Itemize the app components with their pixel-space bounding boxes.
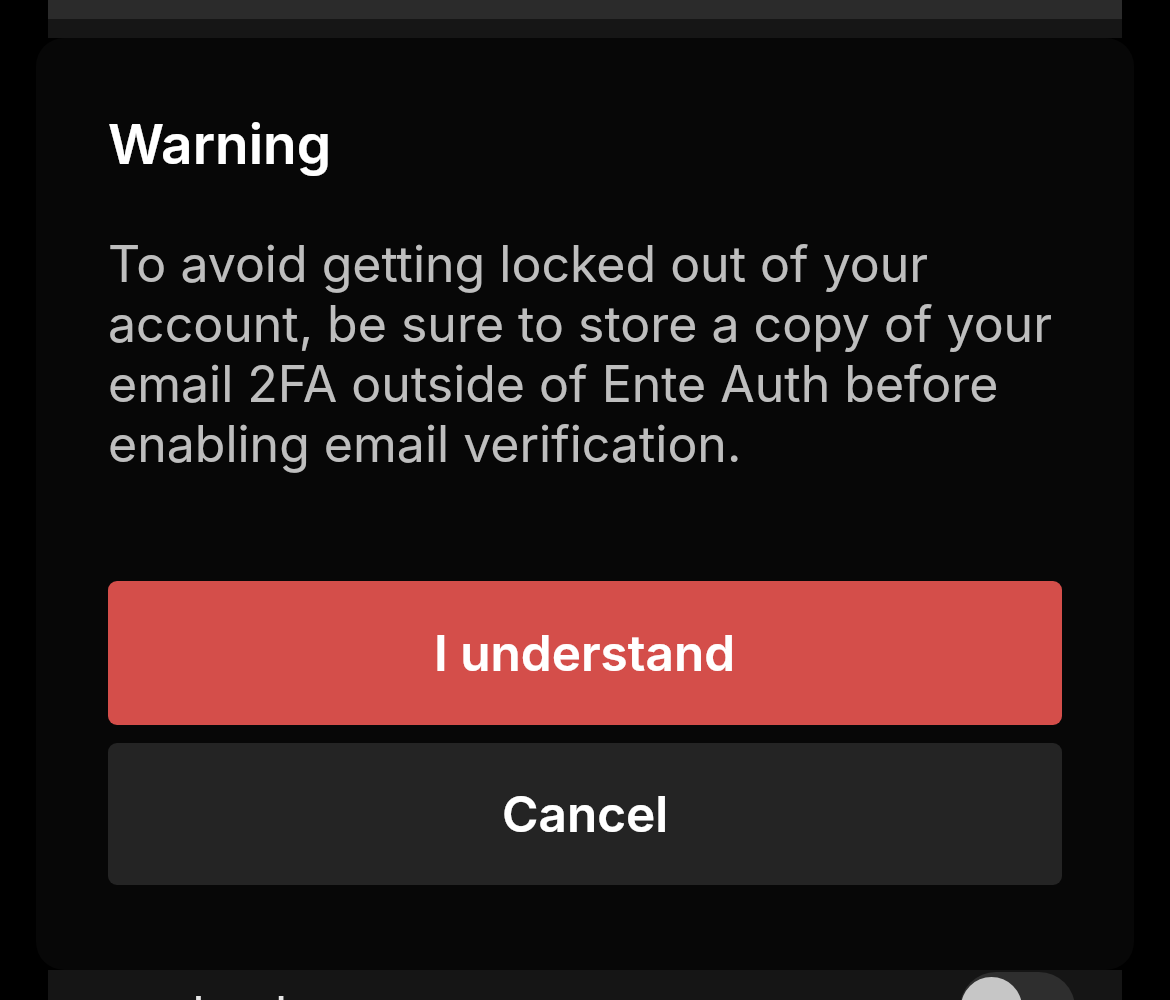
staticText: Lockscreen [192,984,457,1000]
button[interactable]: I understand [108,581,1062,725]
staticText: I understand [434,623,736,683]
staticText: To avoid getting locked out of your acco… [108,234,1062,474]
staticText: Cancel [502,784,669,844]
staticText: Warning [108,111,332,178]
button[interactable]: Cancel [108,743,1062,885]
button[interactable]: Lockscreen [192,984,457,1000]
button[interactable]: Toggle lockscreen [960,972,1075,1000]
